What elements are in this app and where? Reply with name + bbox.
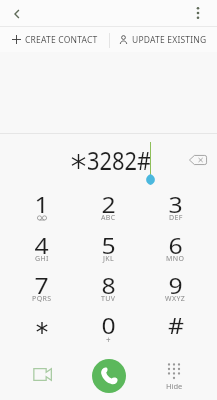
button[interactable]: 9 — [142, 272, 209, 312]
staticText: 5 — [101, 232, 116, 261]
button[interactable]: Call — [92, 359, 126, 393]
staticText: JKL — [103, 254, 115, 264]
button[interactable]: 5 — [75, 232, 142, 272]
staticText: 6 — [168, 232, 183, 261]
button[interactable]: More options — [186, 1, 209, 24]
staticText: DEF — [169, 213, 183, 223]
staticText: 9 — [168, 272, 183, 301]
button[interactable]: 6 — [142, 232, 209, 272]
button[interactable]: 4 — [8, 232, 75, 272]
staticText: 3282# — [87, 143, 152, 177]
staticText: TUV — [101, 294, 116, 304]
button[interactable]: UPDATE EXISTING — [109, 27, 217, 52]
button[interactable]: Back — [5, 2, 28, 25]
staticText: MNO — [166, 254, 185, 264]
staticText: 3 — [168, 191, 183, 220]
staticText: 2 — [101, 191, 116, 220]
button[interactable]: # — [142, 312, 209, 352]
button[interactable]: 3 — [142, 191, 209, 232]
button[interactable]: CREATE CONTACT — [0, 27, 109, 52]
staticText: Hide — [166, 381, 183, 391]
staticText: # — [168, 312, 184, 341]
staticText: 0 — [101, 312, 116, 341]
button[interactable]: 8 — [75, 272, 142, 312]
button[interactable] — [8, 312, 75, 352]
staticText: 7 — [34, 272, 49, 301]
staticText: CREATE CONTACT — [25, 34, 98, 46]
staticText: PQRS — [32, 294, 52, 304]
button[interactable]: 7 — [8, 272, 75, 312]
staticText: + — [106, 334, 111, 345]
staticText: ABC — [101, 213, 116, 223]
staticText: UPDATE EXISTING — [132, 34, 207, 46]
button[interactable]: Video call — [27, 359, 57, 389]
button[interactable]: Backspace — [185, 147, 211, 173]
staticText: 1 — [34, 191, 49, 220]
staticText: 4 — [34, 232, 49, 261]
staticText: 8 — [101, 272, 116, 301]
button[interactable]: 1 — [8, 191, 75, 232]
button[interactable]: 2 — [75, 191, 142, 232]
button[interactable]: Hide keypad — [159, 358, 189, 392]
staticText: WXYZ — [165, 294, 186, 304]
button[interactable]: 0 — [75, 312, 142, 352]
staticText: GHI — [35, 254, 49, 264]
